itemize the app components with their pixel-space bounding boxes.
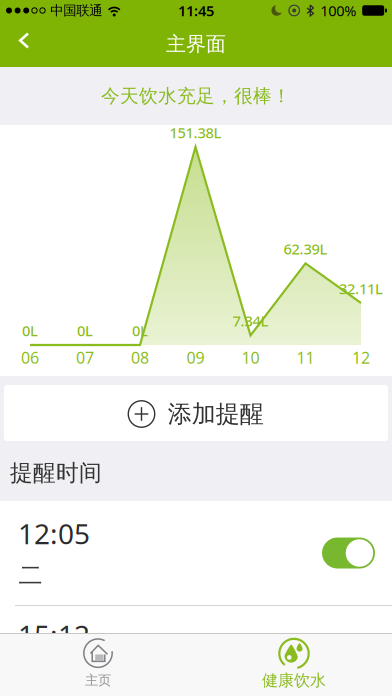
staticText: 12:05 <box>18 515 90 552</box>
staticText: 32.11L <box>339 279 383 298</box>
staticText: 0L <box>132 321 148 340</box>
staticText: 09 <box>186 347 204 368</box>
staticText: 100% <box>320 1 356 20</box>
button[interactable]: 添加提醒 <box>4 385 388 441</box>
staticText: 11:45 <box>178 1 214 20</box>
button[interactable]: 主页 <box>0 634 196 696</box>
staticText: 06 <box>21 347 39 368</box>
button[interactable]: Reminder on <box>322 537 375 568</box>
button[interactable]: 健康饮水 <box>196 634 392 696</box>
staticText: 7.34L <box>232 311 268 331</box>
staticText: 二 <box>18 561 42 590</box>
staticText: 添加提醒 <box>168 399 264 429</box>
staticText: 主界面 <box>166 32 226 56</box>
staticText: 0L <box>22 321 38 340</box>
staticText: 今天饮水充足，很棒！ <box>101 84 291 107</box>
staticText: 10 <box>241 347 259 368</box>
staticText: 0L <box>77 321 93 340</box>
button[interactable]: 12:05 <box>0 501 392 605</box>
staticText: 08 <box>131 347 149 368</box>
staticText: 15:12 <box>18 616 90 654</box>
button[interactable]: Back <box>0 22 31 66</box>
staticText: 11 <box>296 347 314 368</box>
staticText: 健康饮水 <box>262 670 326 690</box>
staticText: 07 <box>76 347 94 368</box>
staticText: 主页 <box>85 672 111 689</box>
staticText: 提醒时间 <box>10 459 102 487</box>
staticText: 62.39L <box>283 239 327 259</box>
staticText: 151.38L <box>169 123 221 142</box>
staticText: 中国联通 <box>50 2 102 19</box>
staticText: 12 <box>352 347 370 368</box>
button[interactable]: 15:12 <box>18 615 168 655</box>
